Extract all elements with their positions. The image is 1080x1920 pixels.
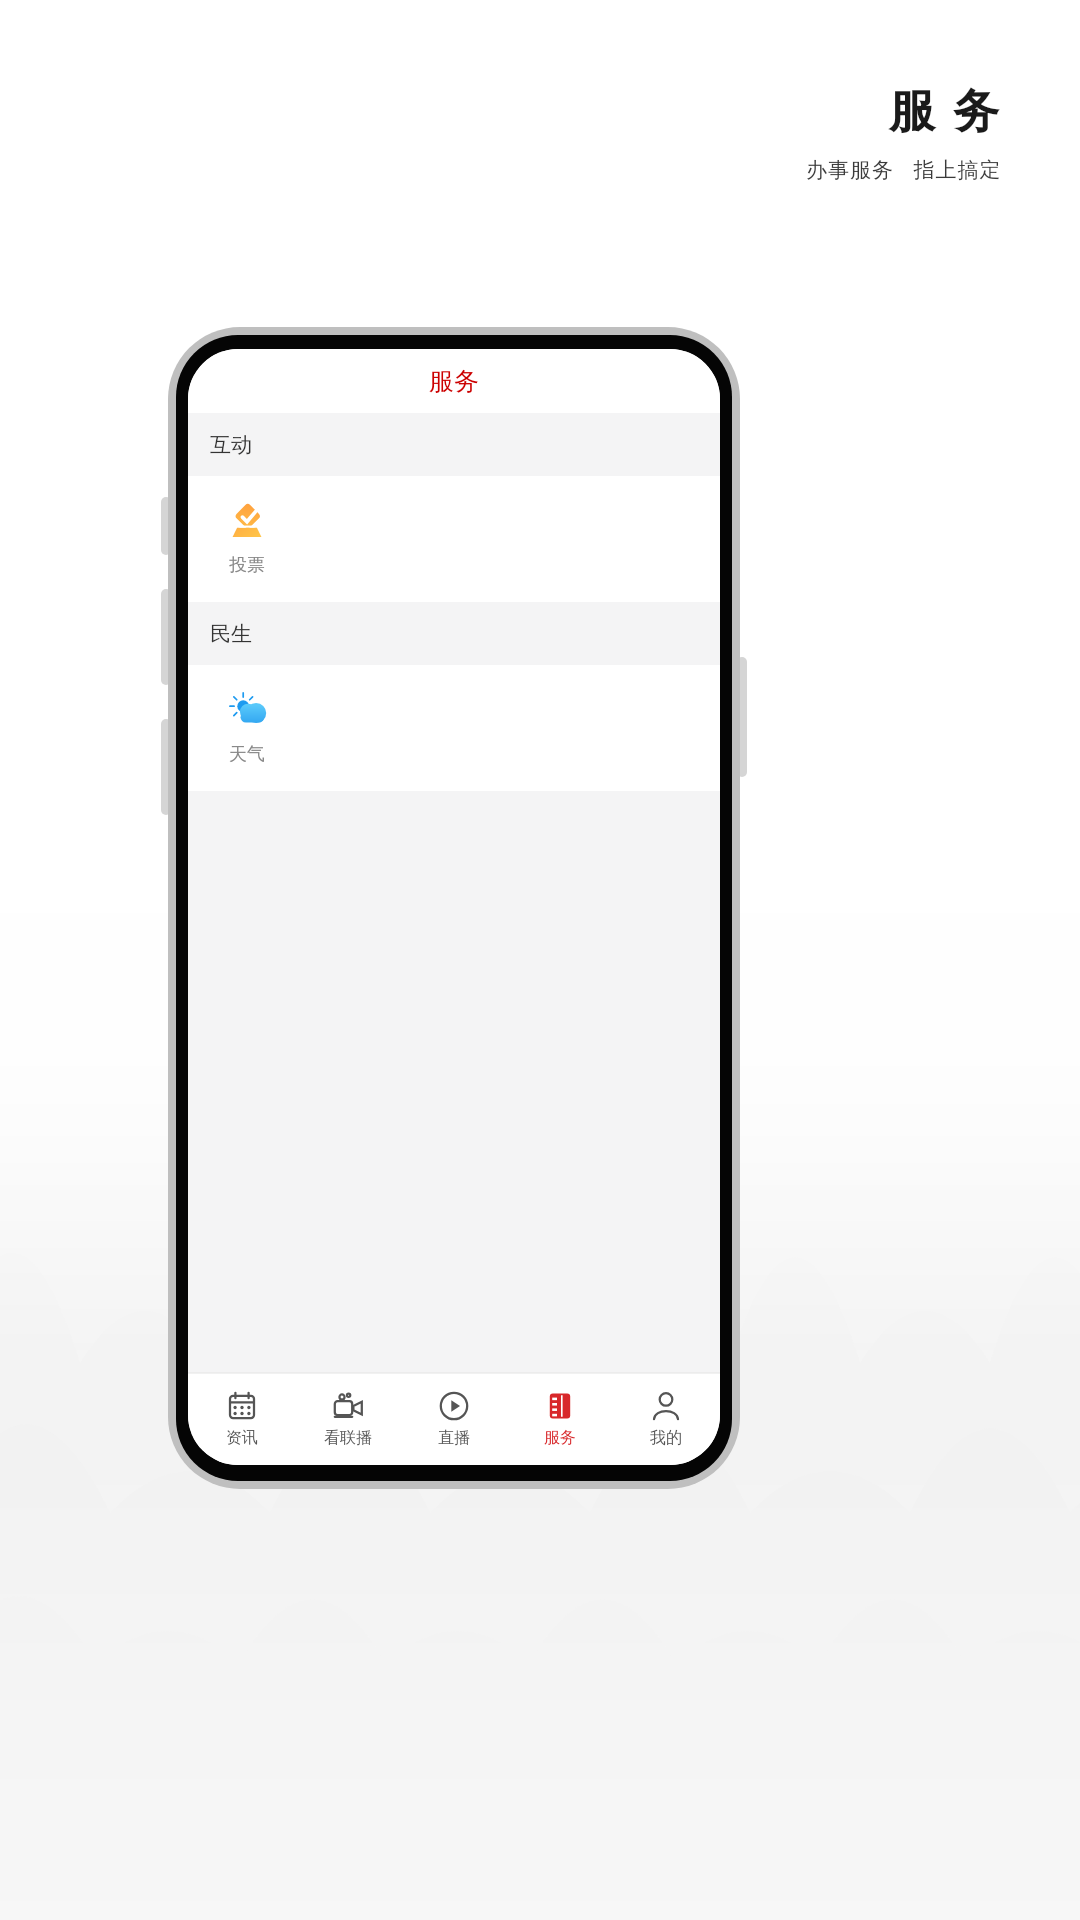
staticText: 直播 <box>438 1428 470 1448</box>
staticText: 服务 <box>544 1428 576 1448</box>
button[interactable]: 服务 <box>508 1373 612 1465</box>
staticText: 办事服务 指上搞定 <box>806 155 1002 184</box>
button[interactable]: 资讯 <box>190 1373 294 1465</box>
button[interactable]: 直播 <box>402 1373 506 1465</box>
button[interactable]: 天气 <box>202 665 292 791</box>
staticText: 互动 <box>210 432 252 458</box>
button[interactable]: 看联播 <box>296 1373 400 1465</box>
staticText: 服 务 <box>889 78 1002 141</box>
staticText: 服务 <box>429 366 479 397</box>
button[interactable]: 投票 <box>202 476 292 602</box>
staticText: 我的 <box>650 1428 682 1448</box>
other: 资讯 <box>227 1391 257 1421</box>
other: 服务 <box>545 1391 575 1421</box>
staticText: 看联播 <box>324 1428 372 1448</box>
staticText: 资讯 <box>226 1428 258 1448</box>
other: 直播 <box>439 1391 469 1421</box>
staticText: 民生 <box>210 621 252 647</box>
button[interactable]: 我的 <box>614 1373 718 1465</box>
other: 看联播 <box>333 1391 363 1421</box>
other: 我的 <box>651 1391 681 1421</box>
staticText: 投票 <box>229 554 265 577</box>
staticText: 天气 <box>229 743 265 766</box>
